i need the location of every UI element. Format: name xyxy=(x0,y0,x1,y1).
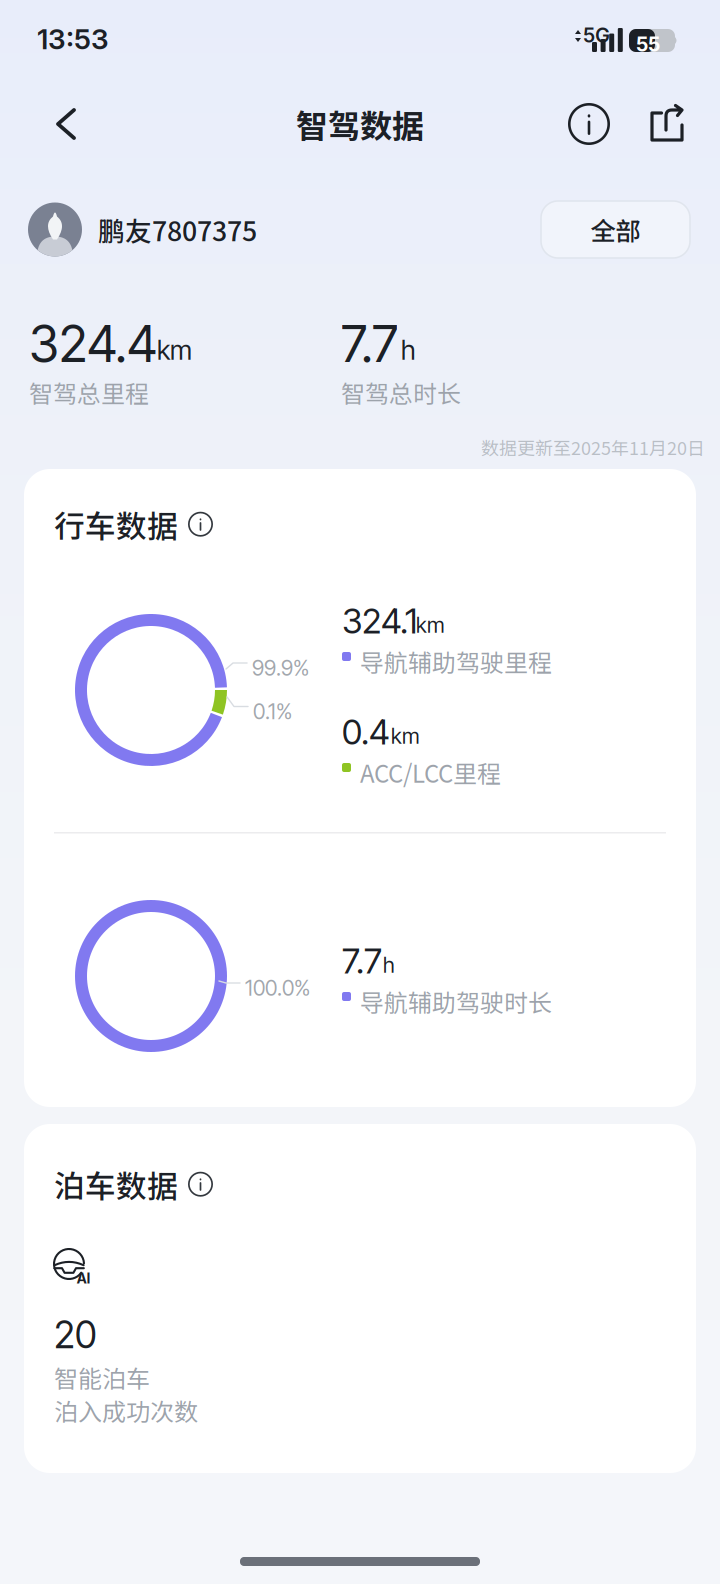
staticText: 20 xyxy=(54,1312,97,1357)
staticText: h xyxy=(401,334,416,366)
staticText: 全部 xyxy=(590,211,640,248)
staticText: 55 xyxy=(636,32,660,56)
staticText: 7.7 xyxy=(341,313,398,374)
staticText: km xyxy=(157,334,192,366)
staticText: 324.4 xyxy=(29,313,157,374)
staticText: ACC/LCC里程 xyxy=(360,755,501,790)
staticText: 100.0% xyxy=(245,975,310,1001)
staticText: 导航辅助驾驶里程 xyxy=(360,644,552,679)
button[interactable]: Info xyxy=(558,93,620,155)
staticText: 泊入成功次数 xyxy=(54,1393,198,1428)
staticText: 智驾总时长 xyxy=(341,375,461,410)
button[interactable]: 全部 xyxy=(541,201,690,258)
staticText: km xyxy=(391,723,420,749)
staticText: 智能泊车 xyxy=(54,1360,150,1395)
staticText: 0.4 xyxy=(342,711,390,753)
button[interactable]: Back xyxy=(35,93,97,155)
staticText: h xyxy=(383,952,395,978)
staticText: 99.9% xyxy=(252,655,309,681)
button[interactable]: Share xyxy=(636,93,698,155)
staticText: 智驾总里程 xyxy=(29,375,149,410)
staticText: 泊车数据 xyxy=(54,1162,178,1206)
staticText: 数据更新至2025年11月20日 xyxy=(481,434,705,460)
staticText: 行车数据 xyxy=(54,502,178,546)
staticText: 13:53 xyxy=(37,22,109,56)
staticText: 324.1 xyxy=(342,600,417,642)
staticText: 鹏友7807375 xyxy=(98,210,257,249)
staticText: 导航辅助驾驶时长 xyxy=(360,984,552,1019)
staticText: 智驾数据 xyxy=(296,101,424,147)
staticText: AI xyxy=(76,1270,90,1287)
staticText: km xyxy=(416,612,445,638)
staticText: 0.1% xyxy=(253,698,292,724)
staticText: 7.7 xyxy=(342,940,382,982)
staticText: 5G xyxy=(583,23,610,47)
